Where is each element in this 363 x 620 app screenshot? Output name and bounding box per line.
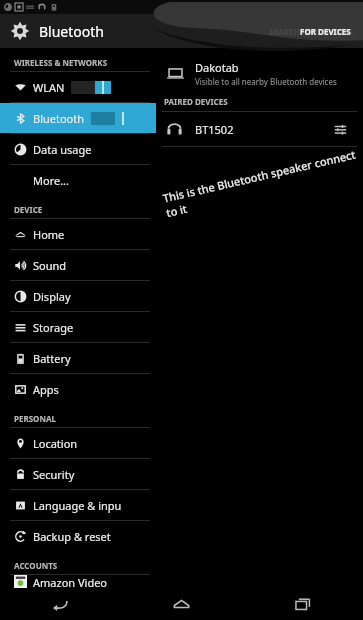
staticText: Apps <box>33 382 59 397</box>
staticText: FOR DEVICES <box>300 26 351 37</box>
button[interactable]: Device settings <box>327 116 353 142</box>
staticText: Location <box>33 436 78 451</box>
button[interactable]: Backup & reset <box>0 521 156 551</box>
button[interactable]: SEARCH FOR DEVICES <box>259 20 363 43</box>
staticText: SEARCH FOR DEVICES <box>269 26 353 37</box>
button[interactable]: Data usage <box>0 134 156 164</box>
button[interactable]: More... <box>0 165 156 195</box>
button[interactable]: Security <box>0 459 156 489</box>
button[interactable]: WLAN <box>0 72 156 102</box>
staticText: Bluetooth <box>33 111 85 126</box>
staticText: PAIRED DEVICES <box>164 96 228 107</box>
button[interactable]: Home <box>0 219 156 249</box>
button[interactable]: Sound <box>0 250 156 280</box>
button[interactable]: FOR DEVICES <box>300 26 351 37</box>
staticText: Data usage <box>33 142 92 157</box>
staticText: DEVICE <box>14 204 43 215</box>
staticText: Display <box>33 289 71 304</box>
button[interactable]: Home <box>121 588 242 620</box>
staticText: Sound <box>33 258 67 273</box>
staticText: More... <box>33 173 70 188</box>
staticText: WIRELESS & NETWORKS <box>14 57 108 68</box>
staticText: Battery <box>33 351 71 366</box>
button[interactable]: Display <box>0 281 156 311</box>
button[interactable]: Dakotab <box>156 56 363 90</box>
staticText: This is the Bluetooth speaker connect to… <box>161 146 363 220</box>
staticText: Dakotab <box>195 60 239 75</box>
staticText: Backup & reset <box>33 529 111 544</box>
button[interactable]: Recent apps <box>242 588 363 620</box>
staticText: ACCOUNTS <box>14 560 58 571</box>
staticText: Visible to all nearby Bluetooth devices <box>195 76 337 87</box>
button[interactable]: Amazon Video <box>0 575 156 588</box>
staticText: Storage <box>33 320 74 335</box>
staticText: Amazon Video <box>33 575 108 588</box>
staticText: Language & inpu <box>33 498 122 513</box>
staticText: BT1502 <box>195 122 234 137</box>
staticText: Home <box>33 227 65 242</box>
button[interactable]: Apps <box>0 374 156 404</box>
button[interactable]: Battery <box>0 343 156 373</box>
button[interactable]: BT1502 <box>156 112 363 146</box>
button[interactable]: Bluetooth <box>0 103 156 133</box>
button[interactable]: Location <box>0 428 156 458</box>
staticText: Bluetooth <box>39 22 104 41</box>
button[interactable]: Back <box>0 588 121 620</box>
staticText: PERSONAL <box>14 413 56 424</box>
staticText: Security <box>33 467 75 482</box>
button[interactable]: Storage <box>0 312 156 342</box>
button[interactable]: Language & inpu <box>0 490 156 520</box>
staticText: WLAN <box>33 80 65 95</box>
